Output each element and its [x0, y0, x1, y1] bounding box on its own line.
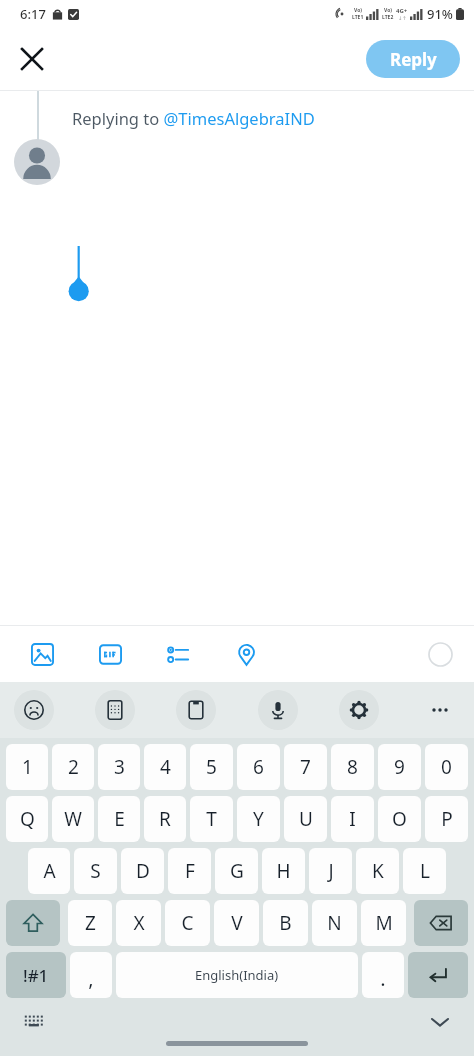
button[interactable]: Emoji: [14, 690, 54, 730]
staticText: Y: [253, 806, 264, 832]
button[interactable]: Add location: [212, 630, 280, 678]
button[interactable]: I: [331, 796, 374, 842]
staticText: 0: [441, 754, 452, 780]
button[interactable]: R: [144, 796, 186, 842]
button[interactable]: Add poll: [144, 630, 212, 678]
staticText: E: [114, 806, 125, 832]
button[interactable]: Z: [68, 900, 112, 946]
button[interactable]: !#1: [6, 952, 66, 998]
button[interactable]: Enter: [408, 952, 468, 998]
staticText: A: [43, 858, 56, 884]
button[interactable]: B: [263, 900, 308, 946]
staticText: ,: [88, 965, 94, 992]
staticText: S: [90, 858, 101, 884]
staticText: LTE1: [352, 14, 364, 21]
button[interactable]: O: [378, 796, 421, 842]
button[interactable]: Change keyboard: [20, 1008, 48, 1036]
staticText: Reply: [390, 48, 437, 71]
staticText: 4: [160, 754, 171, 780]
button[interactable]: D: [121, 848, 164, 894]
staticText: H: [276, 858, 291, 884]
button[interactable]: 6: [237, 744, 280, 790]
staticText: J: [328, 858, 334, 884]
staticText: F: [185, 858, 195, 884]
staticText: M: [375, 910, 393, 936]
staticText: 9: [394, 754, 405, 780]
staticText: D: [136, 858, 150, 884]
button[interactable]: X: [116, 900, 161, 946]
button[interactable]: 2: [52, 744, 94, 790]
button[interactable]: Shift: [6, 900, 60, 946]
staticText: O: [392, 806, 407, 832]
staticText: 3: [114, 754, 125, 780]
button[interactable]: .: [362, 952, 404, 998]
button[interactable]: Sticker: [95, 690, 135, 730]
button[interactable]: Add GIF: [76, 630, 144, 678]
staticText: 7: [300, 754, 311, 780]
staticText: Q: [20, 806, 35, 832]
staticText: 8: [347, 754, 358, 780]
button[interactable]: M: [361, 900, 406, 946]
staticText: 91%: [427, 5, 453, 23]
button[interactable]: H: [262, 848, 305, 894]
button[interactable]: Add photo: [8, 630, 76, 678]
staticText: T: [206, 806, 217, 832]
staticText: B: [279, 910, 292, 936]
button[interactable]: 8: [331, 744, 374, 790]
button[interactable]: English(India): [116, 952, 358, 998]
staticText: W: [64, 806, 82, 832]
button[interactable]: C: [165, 900, 210, 946]
button[interactable]: G: [215, 848, 258, 894]
staticText: 1: [22, 754, 33, 780]
button[interactable]: Backspace: [414, 900, 468, 946]
button[interactable]: J: [309, 848, 352, 894]
button[interactable]: Reply: [366, 40, 460, 78]
button[interactable]: Q: [6, 796, 48, 842]
button[interactable]: Hide keyboard: [426, 1008, 454, 1036]
button[interactable]: A: [28, 848, 70, 894]
button[interactable]: V: [214, 900, 259, 946]
button[interactable]: 3: [98, 744, 140, 790]
staticText: Vo): [384, 7, 392, 14]
staticText: .: [380, 965, 386, 992]
button[interactable]: N: [312, 900, 357, 946]
button[interactable]: Y: [237, 796, 280, 842]
button[interactable]: 4: [144, 744, 186, 790]
staticText: 6:17: [20, 5, 46, 23]
button[interactable]: Close: [10, 37, 54, 81]
button[interactable]: S: [74, 848, 117, 894]
staticText: V: [231, 910, 243, 936]
button[interactable]: P: [425, 796, 468, 842]
button[interactable]: L: [403, 848, 446, 894]
button[interactable]: 5: [190, 744, 233, 790]
staticText: Z: [85, 910, 96, 936]
staticText: !#1: [23, 964, 49, 987]
staticText: L: [420, 858, 430, 884]
staticText: Vo): [354, 7, 362, 14]
button[interactable]: W: [52, 796, 94, 842]
button[interactable]: K: [356, 848, 399, 894]
staticText: Replying to @TimesAlgebraIND: [72, 107, 315, 129]
button[interactable]: Voice input: [258, 690, 298, 730]
button[interactable]: Keyboard settings: [339, 690, 379, 730]
staticText: G: [230, 858, 244, 884]
button[interactable]: 9: [378, 744, 421, 790]
button[interactable]: F: [168, 848, 211, 894]
button[interactable]: U: [284, 796, 327, 842]
button[interactable]: T: [190, 796, 233, 842]
button[interactable]: E: [98, 796, 140, 842]
staticText: I: [349, 806, 356, 832]
button[interactable]: Clipboard: [176, 690, 216, 730]
staticText: R: [159, 806, 171, 832]
staticText: English(India): [195, 966, 279, 984]
button[interactable]: 0: [425, 744, 468, 790]
button[interactable]: Character count: [422, 636, 458, 672]
button[interactable]: 1: [6, 744, 48, 790]
staticText: N: [327, 910, 342, 936]
button[interactable]: ,: [70, 952, 112, 998]
button[interactable]: 7: [284, 744, 327, 790]
staticText: U: [299, 806, 313, 832]
staticText: ↓↑: [398, 15, 407, 21]
button[interactable]: More options: [420, 690, 460, 730]
staticText: K: [372, 858, 384, 884]
